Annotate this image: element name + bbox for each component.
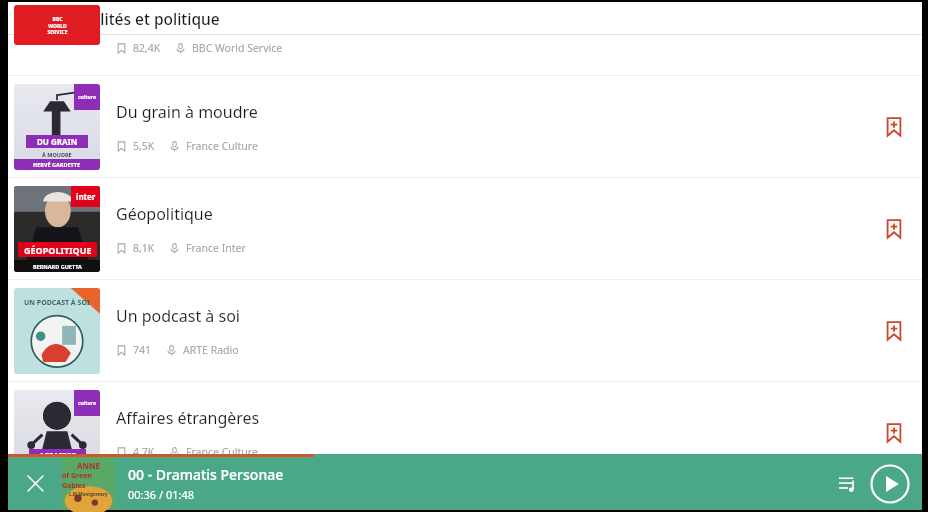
staticText: BERNARD GUETTA [33, 263, 82, 270]
staticText: culture [78, 94, 96, 101]
staticText: 82,4K [133, 41, 161, 55]
button[interactable]: Playlist queue [826, 462, 870, 506]
staticText: ÉTRANGÈRES [38, 464, 77, 472]
button[interactable]: Close player [8, 457, 62, 510]
staticText: GÉOPOLITIQUE [24, 244, 92, 256]
staticText: France Culture [186, 445, 258, 459]
staticText: 00 - Dramatis Personae [128, 465, 284, 484]
staticText: ARTE Radio [183, 343, 239, 357]
staticText: 741 [133, 343, 152, 357]
button[interactable]: Add bookmark [870, 205, 918, 253]
staticText: BBC WORLD SERVICE [47, 16, 68, 35]
staticText: UN PODCAST À SOI [24, 298, 90, 308]
staticText: 8,1K [133, 241, 155, 255]
button[interactable]: inter [8, 178, 922, 279]
button[interactable]: Add bookmark [870, 409, 918, 457]
button[interactable]: Now playing artwork [62, 457, 115, 510]
staticText: inter [76, 191, 96, 202]
staticText: BBC World Service [192, 41, 283, 55]
button[interactable]: UN PODCAST À SOI [8, 280, 922, 381]
staticText: Géopolitique [116, 203, 213, 225]
staticText: HERVÉ GARDETTE [33, 161, 81, 168]
button[interactable]: Back [8, 2, 48, 34]
staticText: Un podcast à soi [116, 305, 240, 327]
button[interactable]: 00 - Dramatis Personae [128, 465, 826, 502]
staticText: 4,7K [133, 445, 155, 459]
staticText: culture [78, 400, 96, 407]
staticText: Actualités et politique [58, 8, 220, 29]
staticText: AFFAIRES [39, 450, 76, 461]
button[interactable]: Add bookmark [870, 103, 918, 151]
staticText: 00:36 / 01:48 [128, 487, 195, 502]
staticText: France Culture [186, 139, 258, 153]
staticText: DU GRAIN [37, 136, 78, 147]
button[interactable]: Play [870, 464, 910, 504]
button[interactable]: BBC WORLD SERVICE [8, 35, 922, 75]
button[interactable]: culture [8, 382, 922, 483]
button[interactable]: culture [8, 76, 922, 177]
staticText: Du grain à moudre [116, 101, 258, 123]
staticText: Affaires étrangères [116, 407, 260, 429]
staticText: L.M.Montgomery [69, 491, 108, 497]
staticText: of Green Gables [62, 471, 115, 491]
staticText: À MOUDRE [42, 151, 72, 158]
button[interactable]: Add bookmark [870, 307, 918, 355]
staticText: ANNE [77, 460, 101, 471]
staticText: 5,5K [133, 139, 155, 153]
staticText: France Inter [186, 241, 246, 255]
